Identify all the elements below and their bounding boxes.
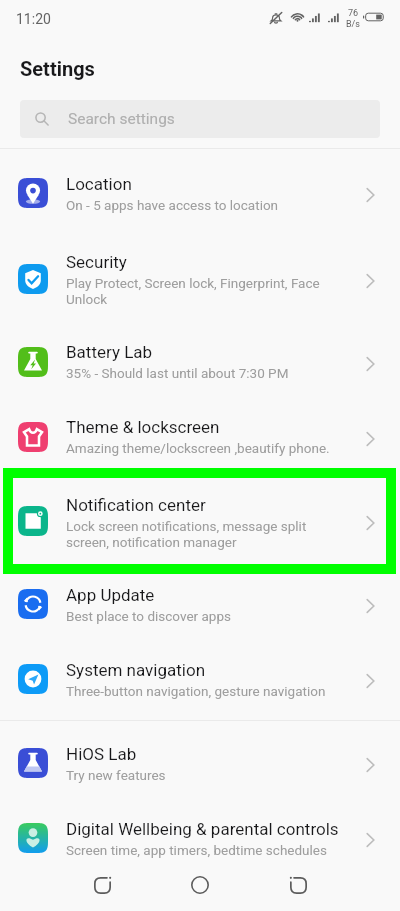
- button[interactable]: Home: [176, 861, 224, 909]
- staticText: Screen time, app timers, bedtime schedul…: [66, 842, 327, 858]
- staticText: Lock screen notifications, message split…: [66, 518, 344, 550]
- button[interactable]: Digital Wellbeing & parental controls: [0, 800, 400, 875]
- staticText: Three-button navigation, gesture navigat…: [66, 683, 326, 699]
- button[interactable]: Security: [0, 230, 400, 323]
- button[interactable]: Theme & lockscreen: [0, 398, 400, 473]
- staticText: Search settings: [68, 111, 175, 128]
- button[interactable]: HiOS Lab: [0, 725, 400, 800]
- button[interactable]: System navigation: [0, 641, 400, 716]
- staticText: Amazing theme/lockscreen ,beautify phone…: [66, 440, 330, 456]
- button[interactable]: Notification center: [0, 473, 400, 566]
- staticText: System navigation: [66, 659, 206, 681]
- button[interactable]: Search settings: [20, 100, 380, 138]
- staticText: Digital Wellbeing & parental controls: [66, 818, 339, 840]
- staticText: Security: [66, 251, 127, 273]
- staticText: Battery Lab: [66, 341, 153, 363]
- staticText: Play Protect, Screen lock, Fingerprint, …: [66, 275, 344, 307]
- button[interactable]: App Update: [0, 566, 400, 641]
- staticText: Notification center: [66, 494, 206, 516]
- button[interactable]: Recents: [274, 861, 322, 909]
- button[interactable]: Battery Lab: [0, 323, 400, 398]
- staticText: 76: [348, 8, 359, 19]
- staticText: Theme & lockscreen: [66, 416, 220, 438]
- button[interactable]: Back: [78, 861, 126, 909]
- staticText: On - 5 apps have access to location: [66, 197, 279, 213]
- staticText: HiOS Lab: [66, 743, 137, 765]
- staticText: 35% - Should last until about 7:30 PM: [66, 365, 289, 381]
- staticText: Settings: [20, 57, 95, 81]
- button[interactable]: Location: [0, 155, 400, 230]
- staticText: Location: [66, 173, 132, 195]
- staticText: B/s: [346, 19, 360, 30]
- staticText: Best place to discover apps: [66, 608, 231, 624]
- staticText: Try new features: [66, 767, 166, 783]
- staticText: App Update: [66, 584, 155, 606]
- staticText: 11:20: [16, 11, 51, 27]
